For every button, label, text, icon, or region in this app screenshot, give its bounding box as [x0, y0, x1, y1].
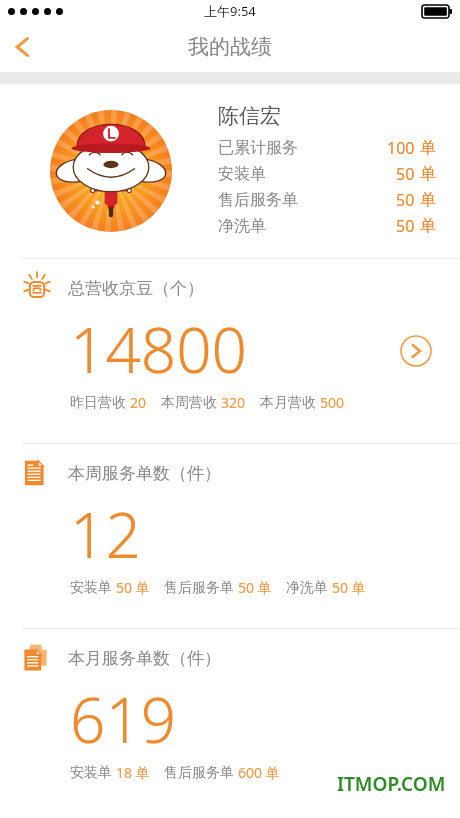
staticText: 安装单 — [70, 579, 112, 597]
staticText: 安装单 — [70, 764, 112, 782]
staticText: 总营收京豆（个） — [68, 278, 204, 299]
staticText: 20 — [130, 393, 147, 412]
button[interactable]: 总营收京豆（个） — [0, 259, 460, 443]
staticText: 50 — [396, 189, 415, 211]
staticText: 50 — [396, 163, 415, 185]
staticText: 安装单 — [218, 164, 266, 184]
staticText: 500 — [320, 393, 345, 412]
staticText: 18 单 — [116, 763, 150, 782]
staticText: 单 — [420, 138, 436, 158]
staticText: 320 — [221, 393, 246, 412]
button[interactable]: Details — [399, 334, 433, 368]
staticText: 净洗单 — [218, 216, 266, 236]
button[interactable]: 本周服务单数（件） — [0, 444, 460, 628]
staticText: 本周营收 — [161, 394, 217, 412]
staticText: 50 单 — [332, 578, 366, 597]
button[interactable]: Back — [0, 24, 46, 70]
staticText: 50 单 — [116, 578, 150, 597]
staticText: 本月服务单数（件） — [68, 648, 221, 669]
staticText: 我的战绩 — [188, 34, 272, 60]
staticText: 12 — [70, 492, 141, 576]
staticText: 单 — [420, 190, 436, 210]
staticText: 陈信宏 — [218, 103, 281, 129]
staticText: 50 — [396, 215, 415, 237]
staticText: 已累计服务 — [218, 138, 298, 158]
staticText: 619 — [70, 677, 177, 761]
staticText: 上午9:54 — [204, 2, 256, 20]
button[interactable]: 本月服务单数（件） — [0, 629, 460, 817]
staticText: 售后服务单 — [164, 764, 234, 782]
staticText: 售后服务单 — [164, 579, 234, 597]
staticText: 本月营收 — [260, 394, 316, 412]
staticText: 600 单 — [238, 763, 280, 782]
staticText: 本周服务单数（件） — [68, 463, 221, 484]
staticText: 净洗单 — [286, 579, 328, 597]
staticText: ITMOP.COM — [337, 771, 446, 797]
staticText: 售后服务单 — [218, 190, 298, 210]
staticText: 单 — [420, 164, 436, 184]
staticText: 100 — [387, 137, 415, 159]
staticText: 50 单 — [238, 578, 272, 597]
staticText: 单 — [420, 216, 436, 236]
staticText: 昨日营收 — [70, 394, 126, 412]
staticText: 14800 — [70, 307, 248, 391]
